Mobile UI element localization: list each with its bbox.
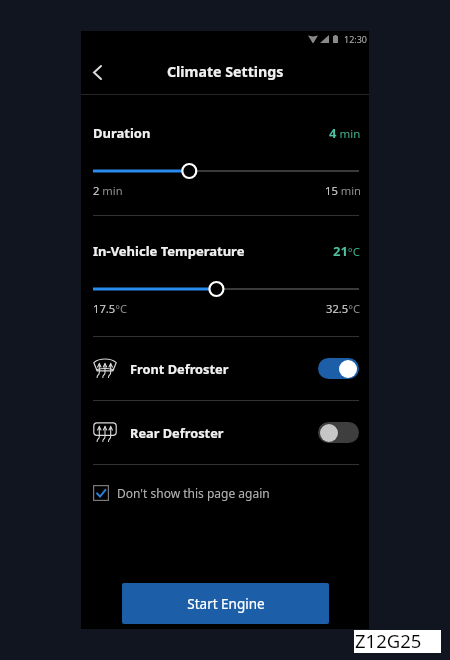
button[interactable]: Start Engine	[122, 583, 329, 624]
staticText: 21°C	[333, 242, 361, 260]
button[interactable]: Duration slider	[93, 161, 359, 181]
button[interactable]: Back	[82, 57, 112, 87]
staticText: Climate Settings	[167, 62, 284, 81]
staticText: Don't show this page again	[117, 485, 270, 501]
staticText: Duration	[93, 124, 151, 142]
staticText: Z12G25	[355, 628, 422, 651]
staticText: 12:30	[344, 33, 368, 45]
staticText: Rear Defroster	[130, 424, 224, 441]
staticText: In-Vehicle Temperature	[93, 242, 245, 260]
button[interactable]: Rear Defroster	[81, 400, 369, 464]
staticText: Front Defroster	[130, 360, 229, 377]
staticText: 2 min	[93, 183, 123, 198]
staticText: 32.5°C	[326, 301, 361, 316]
button[interactable]: In-Vehicle Temperature slider	[93, 279, 359, 299]
staticText: Start Engine	[187, 595, 265, 613]
staticText: 4 min	[329, 124, 361, 142]
staticText: 17.5°C	[93, 301, 128, 316]
staticText: 15 min	[325, 183, 361, 198]
button[interactable]: Front Defroster	[81, 336, 369, 400]
button[interactable]: Don't show this page again	[81, 464, 369, 522]
